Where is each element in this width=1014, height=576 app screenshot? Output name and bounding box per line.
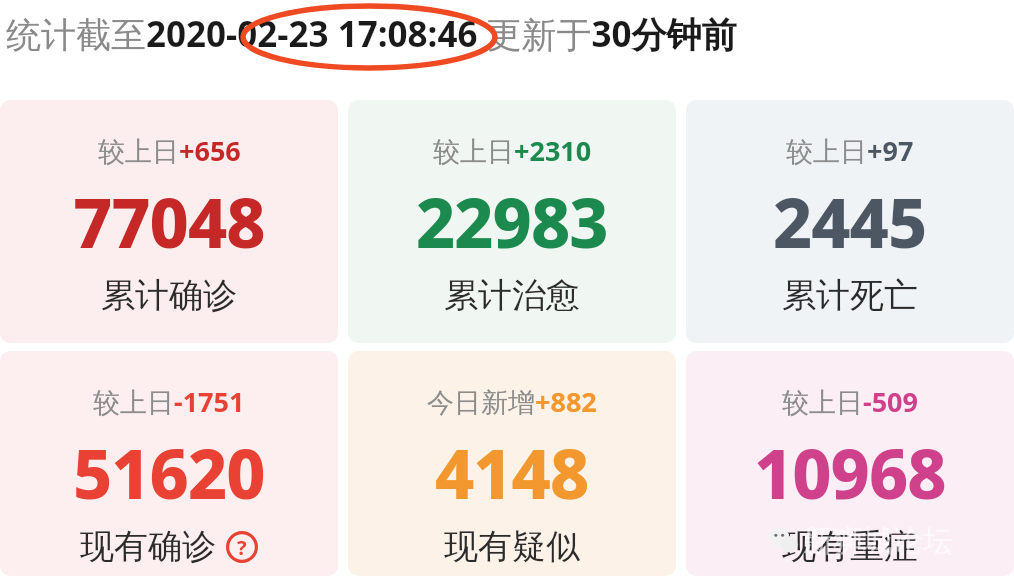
staticText: 累计确诊	[101, 274, 237, 317]
staticText: 较上日+656	[98, 132, 241, 169]
staticText: 较上日-1751	[93, 383, 245, 420]
staticText: ?	[237, 534, 247, 561]
staticText: 较上日+97	[786, 132, 914, 169]
staticText: 2445	[773, 175, 927, 268]
staticText: 现有疑似	[444, 525, 580, 568]
staticText: 现有重症	[782, 525, 918, 568]
button[interactable]: 较上日-1751	[0, 351, 338, 576]
button[interactable]: 今日新增+882	[348, 351, 676, 576]
staticText: 较上日-509	[782, 383, 918, 420]
button[interactable]: 较上日-509	[686, 351, 1014, 576]
staticText: 较上日+2310	[433, 132, 592, 169]
staticText: 统计截至2020-02-23 17:08:46 更新于30分钟前	[6, 10, 737, 58]
button[interactable]: 较上日+656	[0, 100, 338, 343]
staticText: 10968	[754, 426, 946, 519]
staticText: 今日新增+882	[427, 383, 597, 420]
button[interactable]: Help about current confirmed	[226, 531, 258, 563]
staticText: 累计死亡	[782, 274, 918, 317]
staticText: 现有确诊	[80, 525, 216, 568]
button[interactable]: 较上日+97	[686, 100, 1014, 343]
button[interactable]: 统计截至2020-02-23 17:08:46 更新于30分钟前	[6, 10, 737, 58]
staticText: 4148	[435, 426, 589, 519]
button[interactable]: 较上日+2310	[348, 100, 676, 343]
staticText: 累计治愈	[444, 274, 580, 317]
staticText: 77048	[73, 175, 265, 268]
staticText: 新狮城论坛	[803, 522, 953, 560]
staticText: 22983	[416, 175, 608, 268]
staticText: 51620	[73, 426, 265, 519]
